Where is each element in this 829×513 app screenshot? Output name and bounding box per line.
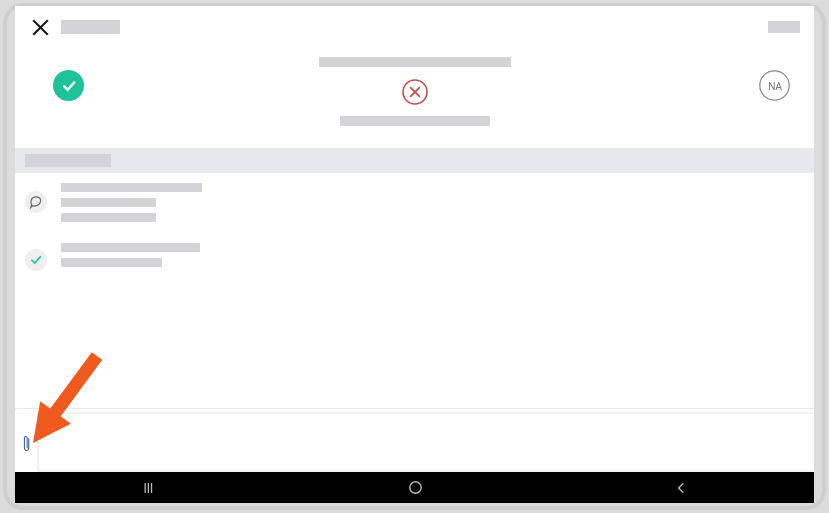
- button[interactable]: [15, 148, 814, 173]
- staticText: NA: [768, 79, 782, 93]
- button[interactable]: Attach file: [15, 409, 38, 472]
- button[interactable]: Home: [282, 472, 548, 503]
- button[interactable]: Close: [23, 10, 57, 44]
- button[interactable]: Approved: [53, 70, 84, 101]
- button[interactable]: Assignee NA: [759, 70, 790, 101]
- button[interactable]: Recents: [15, 472, 282, 503]
- button[interactable]: [15, 243, 814, 267]
- button[interactable]: [15, 183, 814, 222]
- button[interactable]: Back: [548, 472, 814, 503]
- button[interactable]: Menu: [768, 21, 814, 33]
- button[interactable]: [38, 413, 813, 471]
- button[interactable]: Rejected: [401, 78, 429, 106]
